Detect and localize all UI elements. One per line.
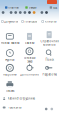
staticText: Документы <box>4 20 18 23</box>
button[interactable]: Заказы <box>25 6 37 9</box>
button[interactable]: Журнал <box>0 49 20 61</box>
button[interactable]: Warning <box>32 10 36 15</box>
button[interactable]: Ещё <box>50 6 57 9</box>
button[interactable]: Open <box>9 10 13 15</box>
staticText: Кабинет сотрудника <box>8 97 35 100</box>
button[interactable]: Новая заявка <box>0 32 20 45</box>
staticText: Заказы <box>29 6 37 9</box>
button[interactable]: Поиск <box>39 49 59 61</box>
staticText: Заявки <box>24 41 34 45</box>
staticText: Главная <box>8 6 19 9</box>
button[interactable]: Delete <box>27 10 32 15</box>
staticText: Ещё <box>53 6 57 9</box>
staticText: Планшеты <box>24 20 37 23</box>
button[interactable]: Paste <box>23 10 27 15</box>
button[interactable]: Планшеты <box>20 19 39 23</box>
button[interactable]: Документы <box>0 19 20 23</box>
staticText: Журнал <box>5 58 15 61</box>
staticText: Клиенты <box>45 20 57 23</box>
button[interactable]: Copy <box>18 10 23 15</box>
staticText: Поиск <box>45 58 53 61</box>
staticText: Справочник клиентов <box>40 39 58 47</box>
button[interactable]: Справочник клиентов <box>39 30 59 47</box>
button[interactable]: Печать <box>0 80 20 93</box>
button[interactable]: Реквизиты <box>0 104 59 110</box>
button[interactable]: Settings <box>44 10 49 15</box>
button[interactable]: Главная <box>5 6 19 9</box>
button[interactable]: Дополнения <box>20 64 39 76</box>
staticText: Готовый заказ <box>23 56 35 63</box>
button[interactable]: Настройки <box>0 64 20 76</box>
button[interactable]: Заявки <box>20 32 39 45</box>
button[interactable]: Разработка <box>39 64 59 76</box>
button[interactable]: Save <box>13 10 18 15</box>
button[interactable]: Active document tab <box>47 0 57 4</box>
staticText: Настройки <box>3 73 17 76</box>
staticText: Новая заявка <box>1 41 19 45</box>
staticText: Разработка <box>42 73 56 76</box>
button[interactable]: New <box>1 10 5 15</box>
staticText: Дополнения <box>20 73 39 76</box>
button[interactable]: Кабинет сотрудника <box>0 95 59 101</box>
staticText: Печать <box>6 89 14 93</box>
button[interactable]: Клиенты <box>39 19 59 23</box>
button[interactable]: Find <box>40 10 44 15</box>
staticText: Реквизиты <box>8 106 22 109</box>
button[interactable]: Готовый заказ <box>20 47 39 63</box>
